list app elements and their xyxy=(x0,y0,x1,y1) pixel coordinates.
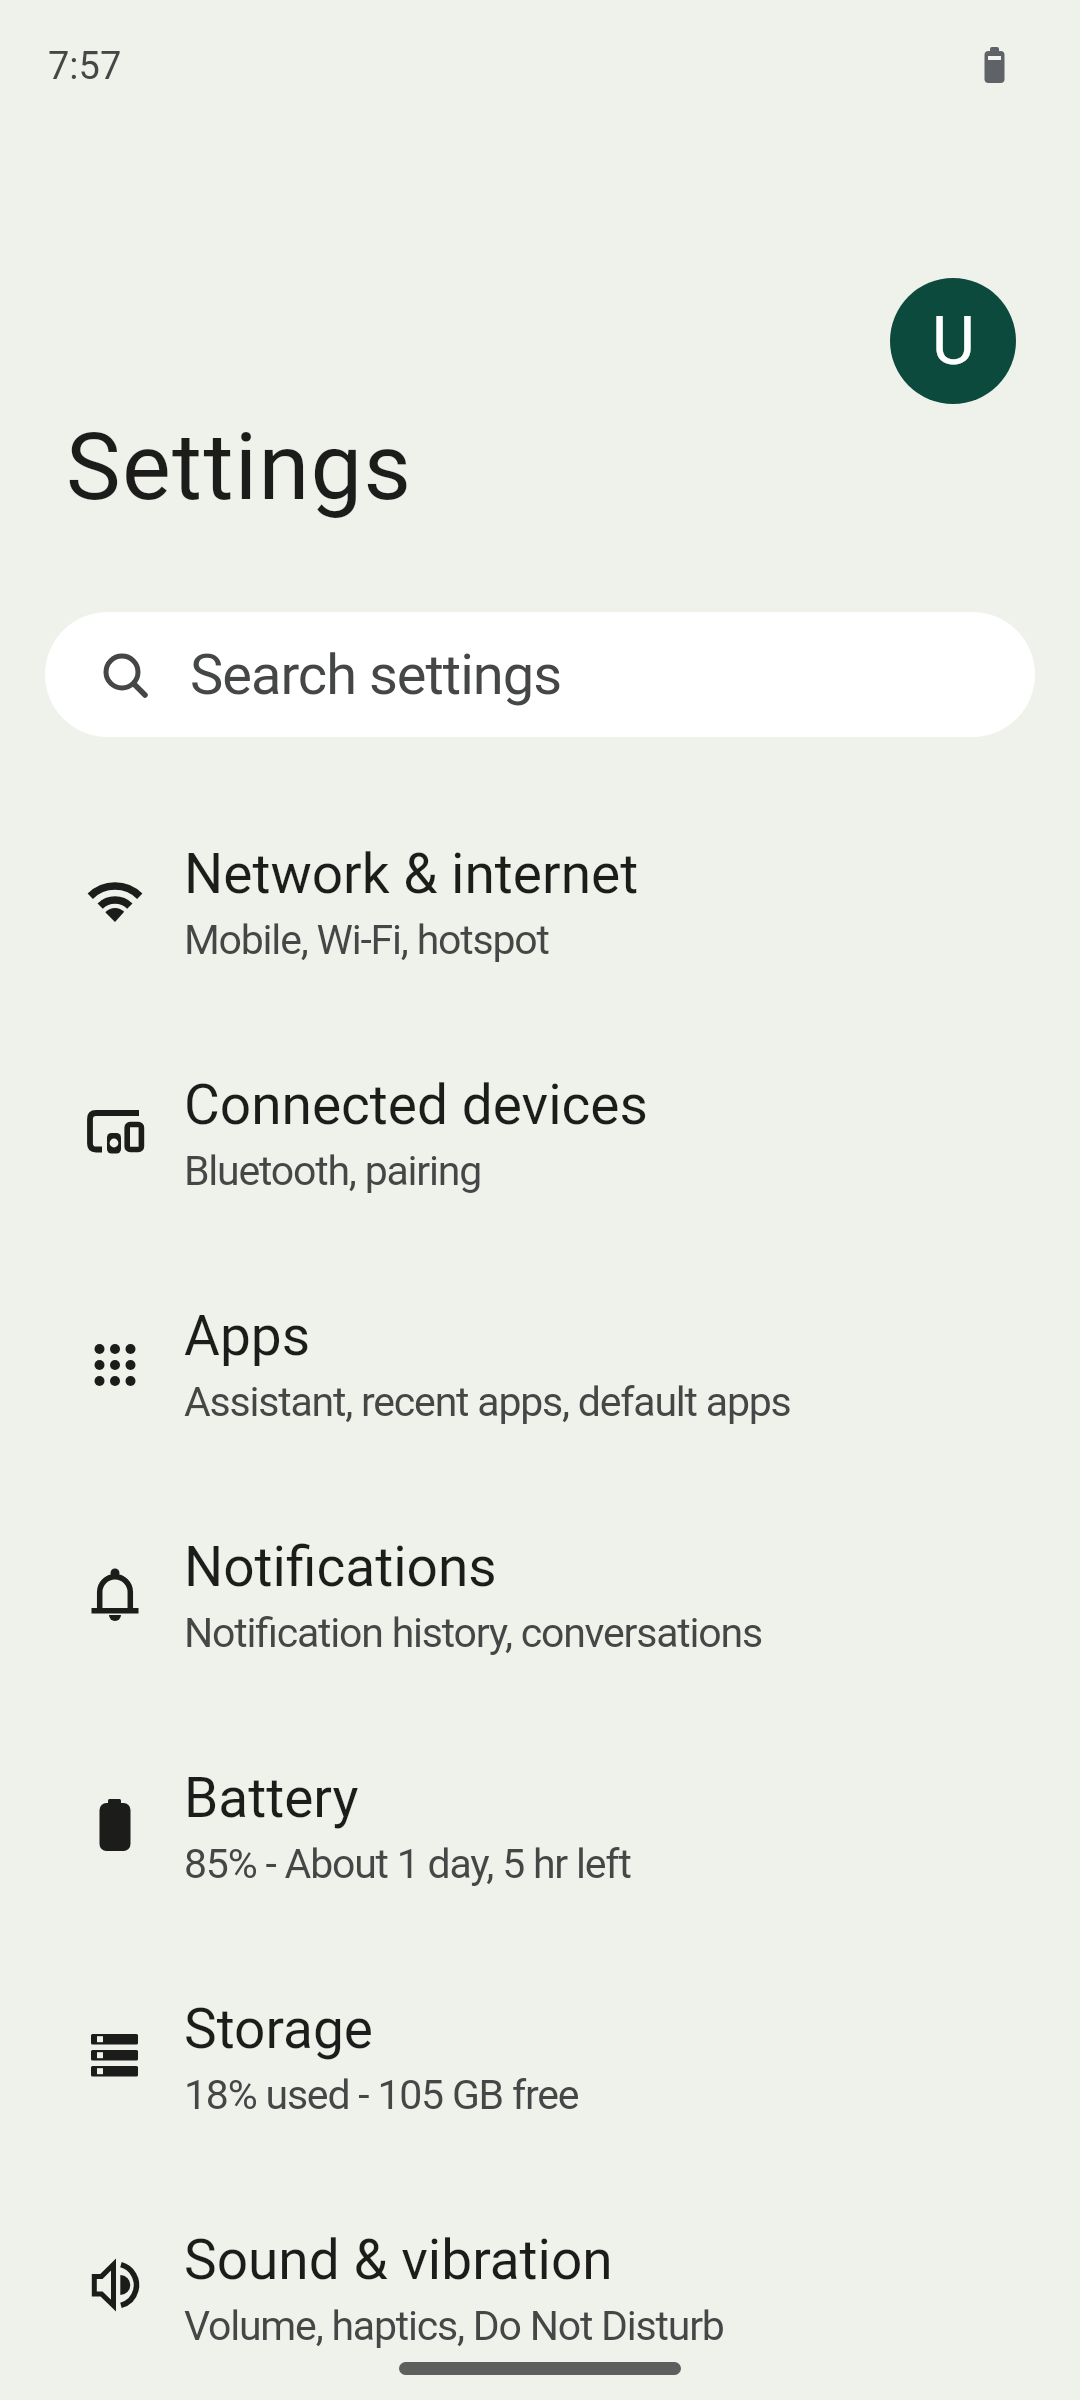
staticText: Volume, haptics, Do Not Disturb xyxy=(184,2302,724,2350)
staticText: Storage xyxy=(184,1997,374,2061)
button[interactable]: Notifications xyxy=(0,1480,1080,1711)
staticText: Connected devices xyxy=(184,1073,648,1137)
staticText: Sound & vibration xyxy=(184,2228,613,2292)
staticText: U xyxy=(932,303,975,380)
button[interactable]: U xyxy=(890,278,1016,404)
staticText: Assistant, recent apps, default apps xyxy=(184,1378,791,1426)
staticText: Mobile, Wi-Fi, hotspot xyxy=(184,916,549,964)
button[interactable]: Battery xyxy=(0,1711,1080,1942)
button[interactable]: Sound & vibration xyxy=(0,2173,1080,2400)
staticText: Battery xyxy=(184,1766,359,1830)
button[interactable]: Apps xyxy=(0,1249,1080,1480)
button[interactable]: Network & internet xyxy=(0,787,1080,1018)
staticText: Search settings xyxy=(190,642,562,708)
button[interactable]: Connected devices xyxy=(0,1018,1080,1249)
staticText: Notification history, conversations xyxy=(184,1609,762,1657)
staticText: Settings xyxy=(66,414,413,522)
button[interactable]: Storage xyxy=(0,1942,1080,2173)
staticText: 7:57 xyxy=(48,44,122,89)
staticText: Apps xyxy=(184,1304,311,1368)
staticText: 18% used - 105 GB free xyxy=(184,2071,579,2119)
staticText: 85% - About 1 day, 5 hr left xyxy=(184,1840,631,1888)
staticText: Bluetooth, pairing xyxy=(184,1147,482,1195)
staticText: Notifications xyxy=(184,1535,497,1599)
staticText: Network & internet xyxy=(184,842,639,906)
button[interactable]: Search settings xyxy=(45,612,1035,737)
